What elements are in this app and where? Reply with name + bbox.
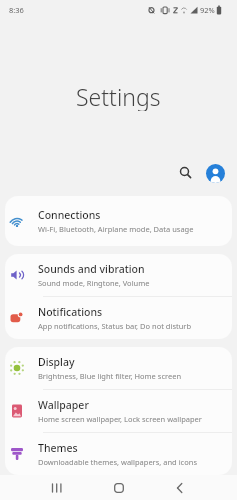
button[interactable]: Sounds and vibration: [5, 254, 232, 296]
button[interactable]: Connections: [5, 200, 232, 242]
staticText: Settings: [76, 81, 161, 111]
staticText: Connections: [38, 208, 101, 222]
staticText: Home screen wallpaper, Lock screen wallp…: [38, 414, 202, 424]
button[interactable]: [173, 157, 199, 189]
staticText: Brightness, Blue light filter, Home scre…: [38, 371, 182, 381]
button[interactable]: Display: [5, 347, 232, 389]
staticText: Sound mode, Ringtone, Volume: [38, 278, 150, 288]
staticText: Wallpaper: [38, 398, 89, 412]
staticText: Display: [38, 355, 75, 369]
staticText: Sounds and vibration: [38, 262, 145, 276]
button[interactable]: Notifications: [5, 297, 232, 339]
button[interactable]: Wallpaper: [5, 390, 232, 432]
button[interactable]: [99, 475, 139, 500]
staticText: Themes: [38, 441, 78, 455]
staticText: Wi-Fi, Bluetooth, Airplane mode, Data us…: [38, 224, 194, 234]
button[interactable]: [199, 157, 231, 189]
button[interactable]: Themes: [5, 433, 232, 475]
staticText: Notifications: [38, 305, 103, 319]
staticText: 92%: [200, 5, 215, 15]
staticText: Downloadable themes, wallpapers, and ico…: [38, 457, 197, 467]
staticText: 8:36: [9, 5, 24, 15]
button[interactable]: [37, 475, 77, 500]
button[interactable]: [160, 475, 200, 500]
staticText: App notifications, Status bar, Do not di…: [38, 321, 192, 331]
